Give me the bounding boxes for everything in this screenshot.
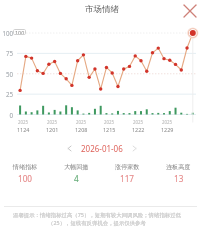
staticText: 1208 (75, 126, 88, 133)
staticText: 2026-01-06 (81, 143, 123, 154)
staticText: 117 (120, 173, 135, 184)
button[interactable]: 涨停家数 (102, 160, 153, 186)
staticText: 2025 (133, 119, 144, 125)
staticText: 大幅回撤 (64, 163, 89, 171)
staticText: 13 (174, 173, 184, 184)
button[interactable]: Close (180, 1, 200, 21)
button[interactable]: 情绪指标 (0, 160, 51, 186)
staticText: 100 (2, 29, 13, 37)
staticText: 2025 (104, 119, 115, 125)
staticText: 连板高度 (166, 163, 191, 171)
staticText: 1124 (17, 126, 30, 133)
staticText: 1215 (103, 126, 116, 133)
button[interactable]: 大幅回撤 (51, 160, 102, 186)
staticText: 2025 (18, 119, 29, 125)
staticText: 1222 (132, 126, 145, 133)
staticText: 市场情绪 (0, 4, 204, 15)
staticText: 温馨提示：情绪指标过高（75），短期有较大回调风险；情绪指标过低（25），短线有… (10, 211, 184, 226)
staticText: 25 (5, 90, 13, 98)
staticText: 1229 (161, 126, 174, 133)
staticText: 1201 (46, 126, 59, 133)
staticText: 50 (5, 70, 13, 78)
staticText: 2025 (76, 119, 87, 125)
staticText: 75 (5, 49, 13, 57)
button[interactable]: 连板高度 (153, 160, 204, 186)
staticText: 涨停家数 (115, 163, 140, 171)
staticText: 100 (18, 173, 33, 184)
staticText: 4 (74, 173, 79, 184)
button[interactable]: Previous day (63, 142, 76, 155)
staticText: 0 (9, 111, 13, 119)
staticText: 情绪指标 (13, 163, 38, 171)
button[interactable]: Next day (128, 142, 141, 155)
staticText: 2025 (162, 119, 173, 125)
staticText: 2025 (47, 119, 58, 125)
button[interactable]: 2026-01-06 (81, 143, 123, 154)
staticText: 100 (15, 29, 25, 35)
